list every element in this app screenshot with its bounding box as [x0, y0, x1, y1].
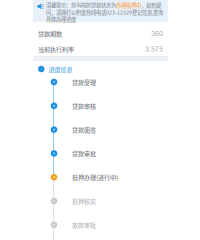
staticText: 贷款受理 — [72, 78, 96, 86]
staticText: 贷款审核 — [72, 101, 96, 110]
staticText: 当前执行利率 — [38, 45, 74, 53]
staticText: 贷款审批 — [72, 149, 96, 158]
staticText: 3.575 — [145, 45, 163, 53]
staticText: 贷款面签 — [72, 125, 96, 134]
staticText: 抵押核实 — [72, 197, 96, 205]
staticText: 360 — [151, 29, 163, 38]
staticText: 温馨提示：您当前的贷款状态为办理抵押中，如有疑问，请拨打公积金热线电话023-1… — [46, 1, 163, 23]
staticText: 抵押办理(进行中) — [72, 173, 118, 182]
staticText: 放款审批 — [72, 220, 96, 229]
staticText: 进度信息 — [48, 65, 72, 73]
staticText: 贷款期数 — [38, 29, 62, 38]
